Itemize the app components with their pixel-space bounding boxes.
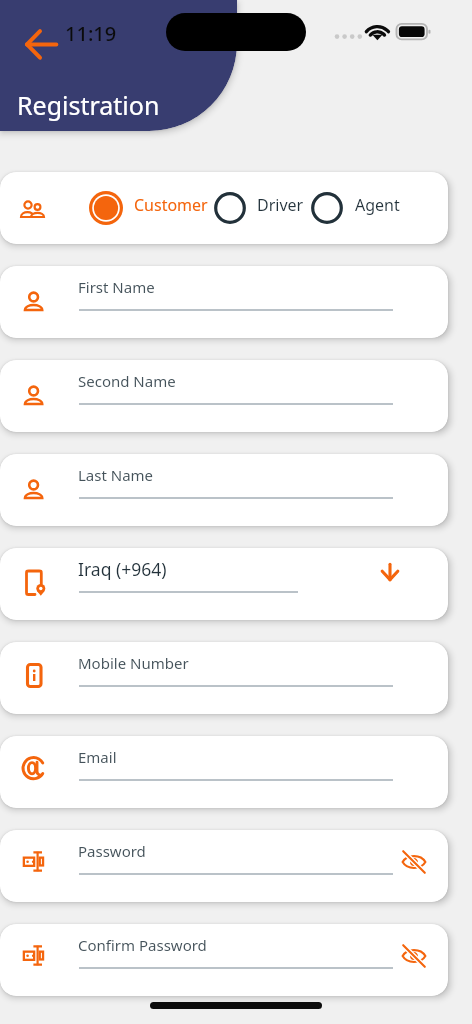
button[interactable]: Select country (374, 564, 406, 596)
staticText: First Name (78, 277, 155, 297)
staticText: Agent (355, 194, 400, 216)
button[interactable]: Email (0, 736, 448, 808)
staticText: Iraq (+964) (78, 557, 167, 581)
staticText: Confirm Password (78, 935, 207, 955)
staticText: Registration (17, 88, 160, 122)
staticText: 11:19 (65, 20, 117, 47)
button[interactable] (307, 185, 347, 231)
button[interactable]: Mobile Number (0, 642, 448, 714)
button[interactable]: Password (0, 830, 448, 902)
button[interactable]: Iraq (+964) (0, 548, 448, 620)
button[interactable]: Show password (398, 846, 430, 878)
staticText: Driver (257, 194, 304, 216)
staticText: Email (78, 747, 117, 767)
button[interactable]: Back (21, 25, 61, 63)
button[interactable]: Show password (398, 940, 430, 972)
button[interactable]: Second Name (0, 360, 448, 432)
staticText: Second Name (78, 371, 176, 391)
button[interactable]: First Name (0, 266, 448, 338)
button[interactable] (210, 185, 250, 231)
staticText: Customer (134, 194, 208, 216)
button[interactable] (86, 185, 126, 231)
staticText: Password (78, 841, 146, 861)
staticText: Mobile Number (78, 653, 189, 673)
staticText: Last Name (78, 465, 154, 485)
button[interactable]: Last Name (0, 454, 448, 526)
button[interactable]: Customer (0, 172, 448, 244)
button[interactable]: Confirm Password (0, 924, 448, 996)
